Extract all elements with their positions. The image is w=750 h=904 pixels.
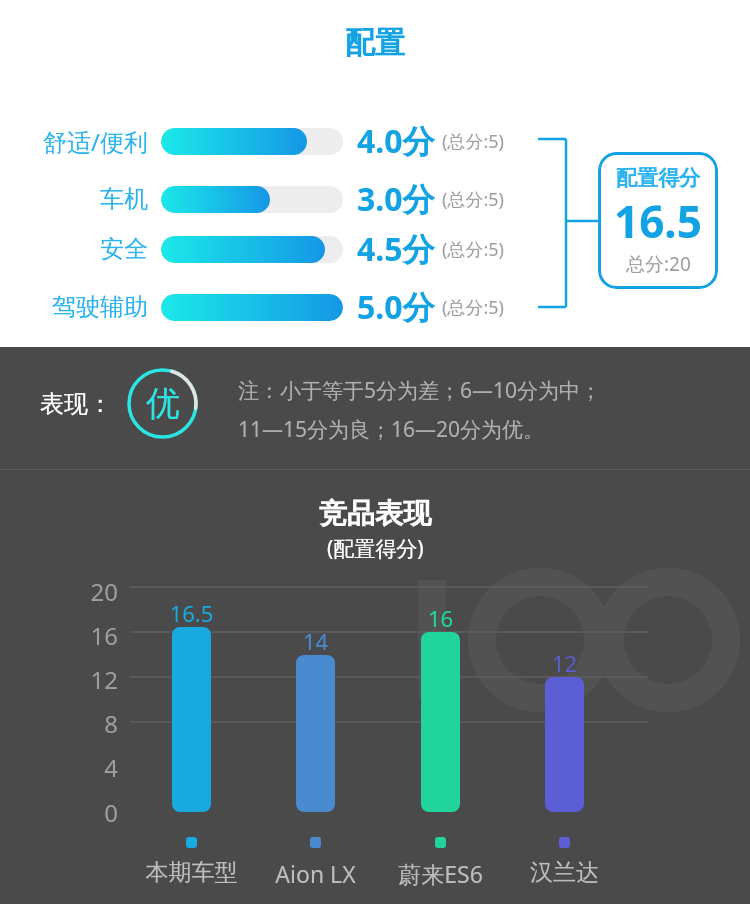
staticText: 驾驶辅助 — [52, 292, 148, 322]
staticText: 4.5分 — [357, 227, 435, 271]
button[interactable] — [296, 655, 335, 812]
button[interactable] — [172, 627, 211, 812]
staticText: 0 — [0, 796, 118, 829]
staticText: 表现： — [40, 389, 112, 419]
staticText: 汉兰达 — [500, 858, 629, 887]
staticText: 16 — [401, 603, 480, 633]
staticText: 16 — [0, 619, 118, 652]
other: 评价：优 — [127, 368, 198, 439]
staticText: 舒适/便利 — [43, 125, 148, 158]
staticText: 配置得分 — [616, 165, 700, 191]
staticText: 8 — [0, 707, 118, 740]
button[interactable]: 驾驶辅助 — [0, 282, 750, 332]
button[interactable]: 车机 — [0, 174, 750, 224]
button[interactable] — [545, 677, 584, 812]
staticText: (总分:5) — [442, 237, 504, 262]
button[interactable]: 安全 — [0, 224, 750, 274]
staticText: 蔚来ES6 — [376, 858, 505, 889]
staticText: 11—15分为良；16—20分为优。 — [238, 415, 545, 444]
staticText: 4 — [0, 751, 118, 784]
staticText: 16.5 — [152, 598, 231, 628]
staticText: 本期车型 — [127, 858, 256, 887]
staticText: 20 — [0, 575, 118, 608]
button[interactable] — [421, 632, 460, 812]
staticText: 12 — [525, 648, 604, 678]
staticText: 安全 — [100, 234, 148, 264]
staticText: 注：小于等于5分为差；6—10分为中； — [238, 376, 602, 405]
staticText: 总分:20 — [626, 251, 691, 277]
staticText: 5.0分 — [357, 285, 435, 329]
button[interactable]: 配置得分 — [598, 152, 718, 289]
staticText: (配置得分) — [327, 534, 424, 563]
button[interactable]: 舒适/便利 — [0, 116, 750, 166]
staticText: 车机 — [100, 184, 148, 214]
staticText: 竞品表现 — [319, 496, 431, 531]
staticText: Aion LX — [251, 858, 380, 889]
staticText: 16.5 — [614, 191, 702, 251]
staticText: 配置 — [345, 24, 405, 62]
staticText: (总分:5) — [442, 129, 504, 154]
staticText: 3.0分 — [357, 177, 435, 221]
staticText: 12 — [0, 663, 118, 696]
staticText: (总分:5) — [442, 187, 504, 212]
staticText: 4.0分 — [357, 119, 435, 163]
staticText: (总分:5) — [442, 295, 504, 320]
staticText: 14 — [276, 626, 355, 656]
staticText: 优 — [146, 382, 180, 425]
